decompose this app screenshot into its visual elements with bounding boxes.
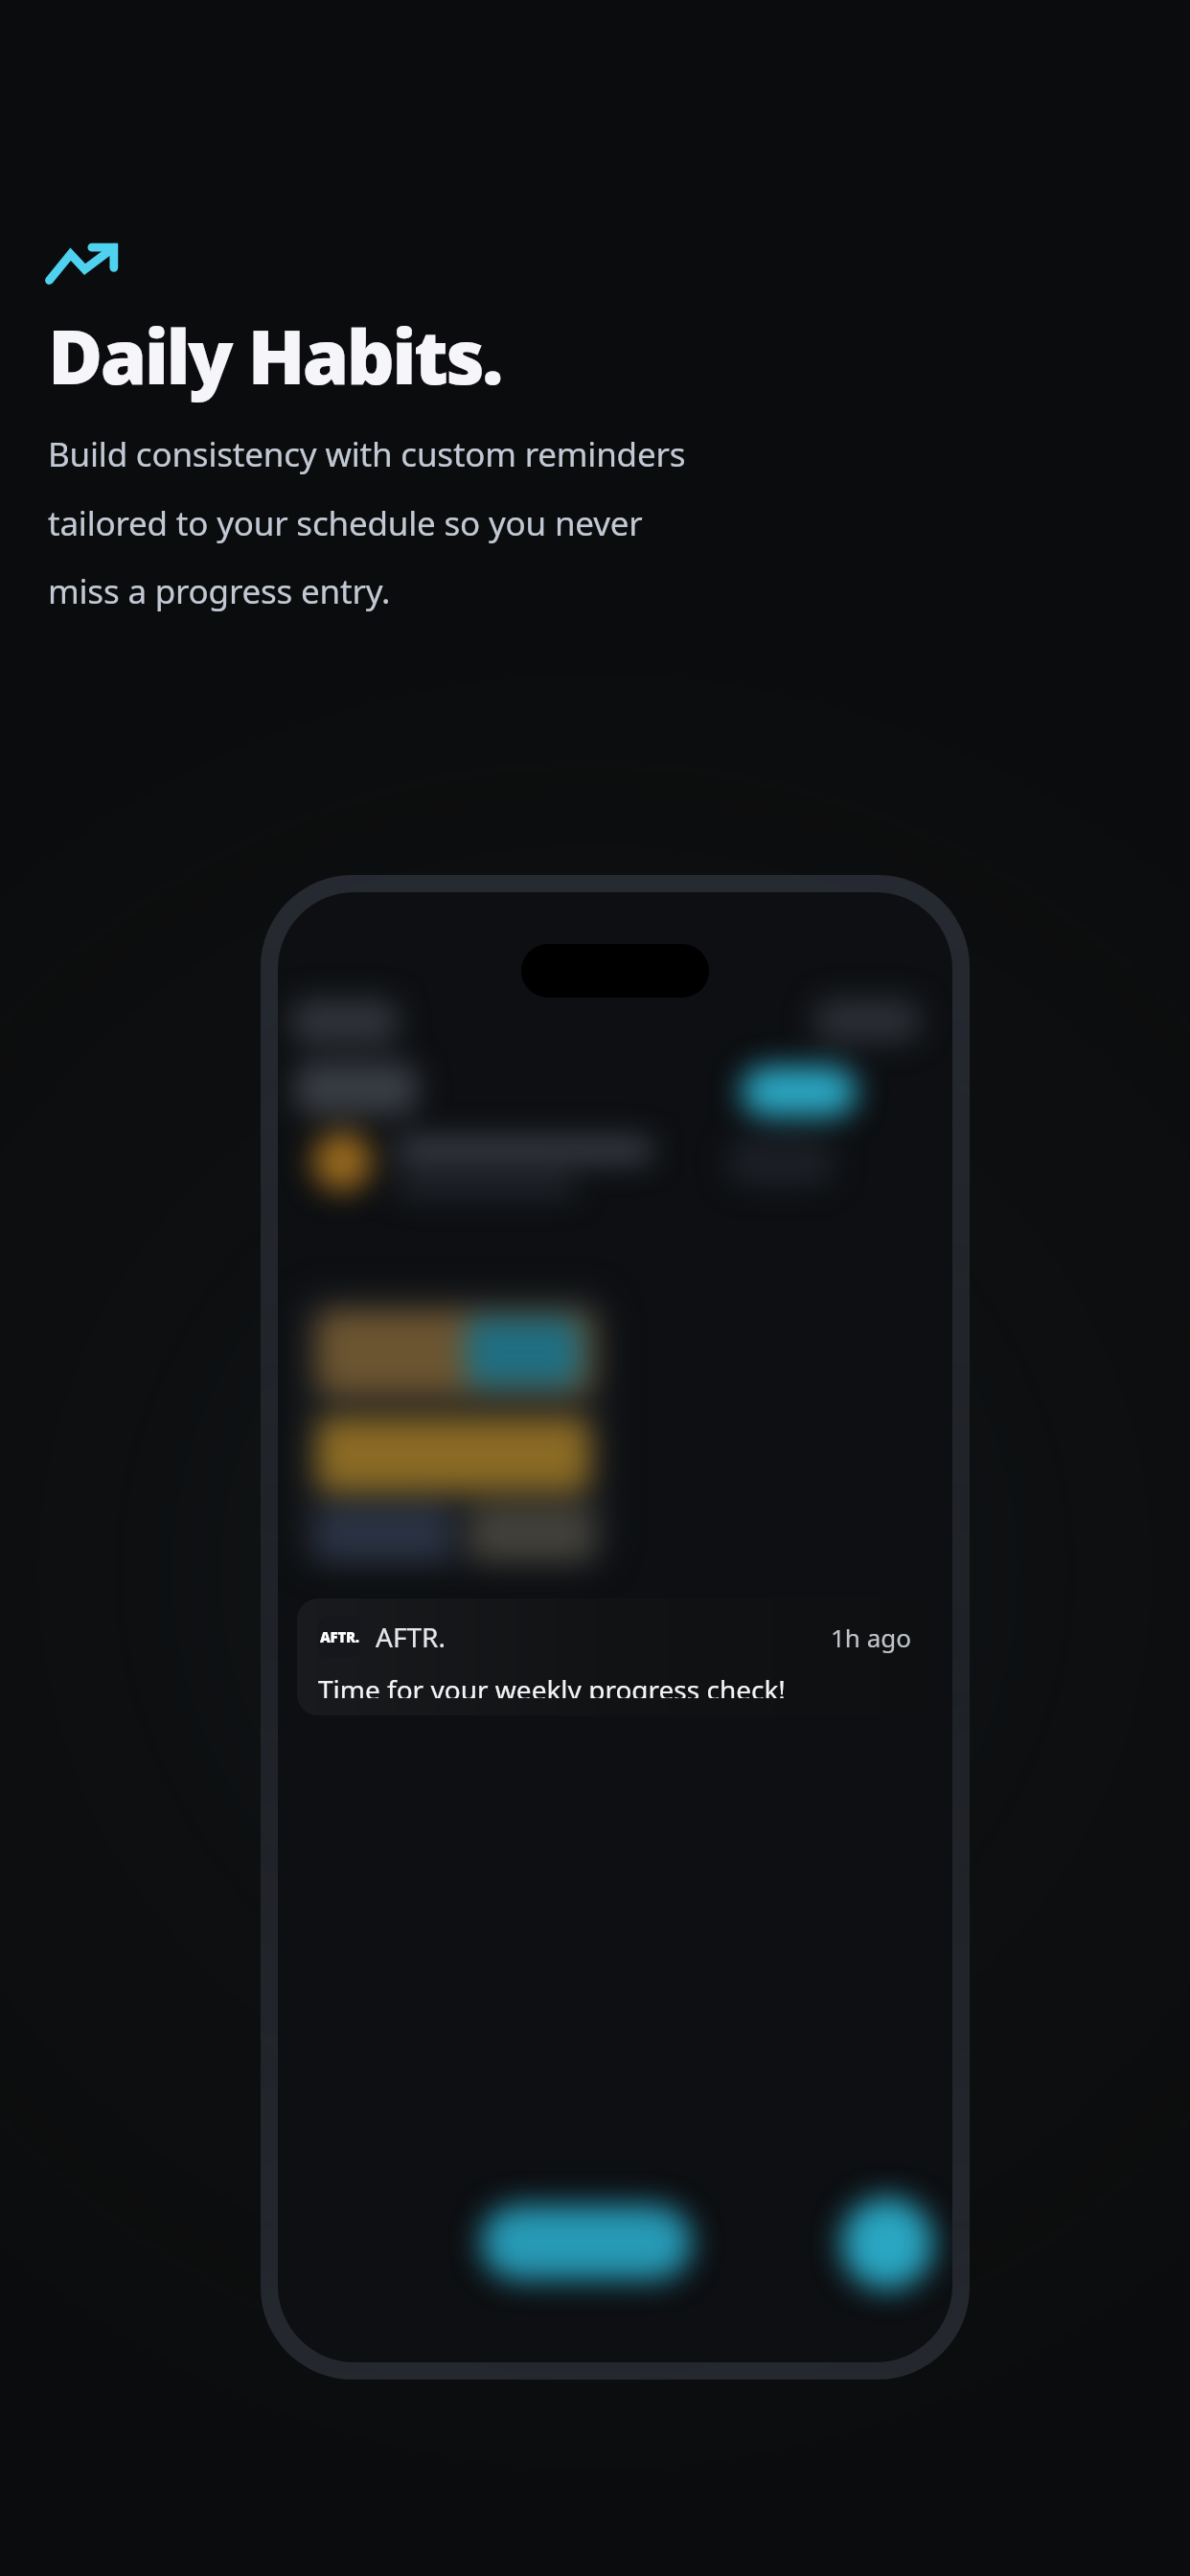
staticText: Daily Habits.: [48, 305, 502, 406]
button[interactable]: AFTR.: [297, 1598, 933, 1715]
staticText: Build consistency with custom reminders …: [48, 431, 699, 613]
staticText: AFTR.: [320, 1627, 359, 1646]
staticText: AFTR.: [376, 1619, 446, 1655]
other: Trending up: [48, 241, 119, 284]
staticText: Time for your weekly progress check!: [318, 1671, 786, 1698]
staticText: 1h ago: [831, 1621, 912, 1654]
